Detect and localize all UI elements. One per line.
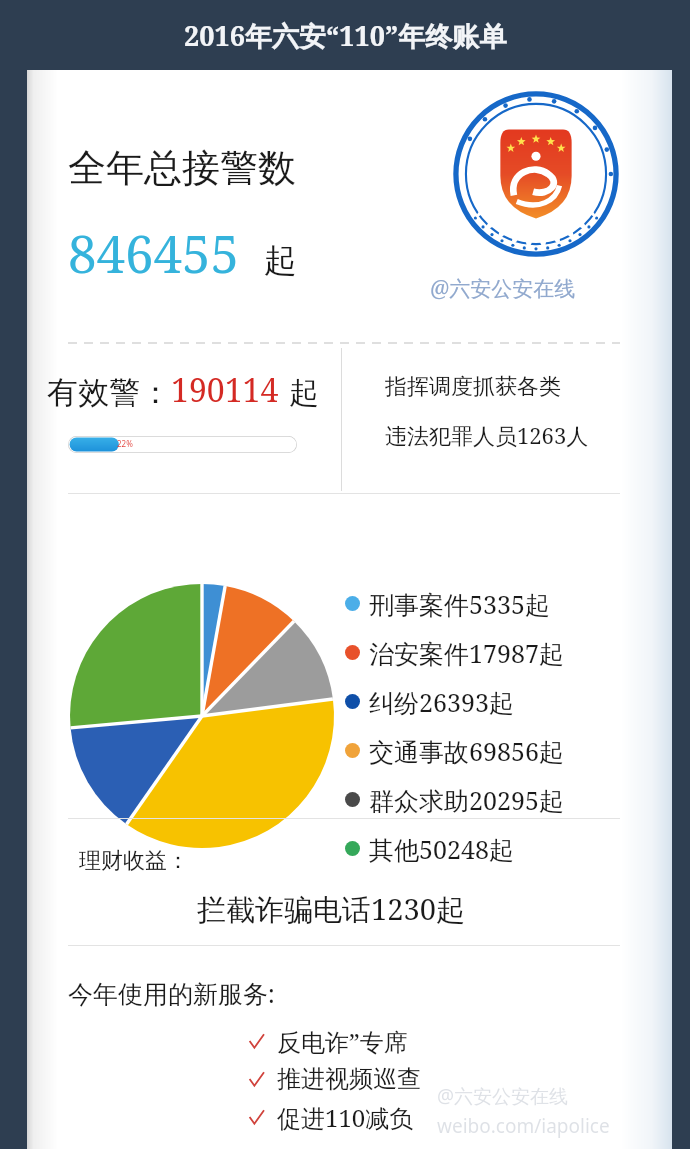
button[interactable]: 交通事故69856起 — [345, 726, 564, 775]
button[interactable]: 反电诈”专席 — [249, 1022, 408, 1060]
staticText: 今年使用的新服务: — [68, 976, 275, 1010]
staticText: 刑事案件5335起 — [369, 587, 550, 621]
button[interactable]: 22% — [68, 436, 297, 453]
staticText: 有效警： — [47, 373, 171, 412]
staticText: 2016年六安“110”年终账单 — [184, 17, 507, 54]
staticText: 拦截诈骗电话1230起 — [197, 889, 465, 929]
button[interactable]: 刑事案件5335起 — [345, 579, 550, 628]
staticText: 理财收益： — [79, 847, 189, 875]
staticText: 促进110减负 — [277, 1101, 414, 1134]
button[interactable]: 促进110减负 — [249, 1098, 414, 1136]
staticText: 交通事故69856起 — [369, 734, 564, 768]
button[interactable]: 治安案件17987起 — [345, 628, 564, 677]
staticText: 违法犯罪人员1263人 — [385, 420, 589, 450]
staticText: 治安案件17987起 — [369, 636, 564, 670]
staticText: 全年总接警数 — [68, 144, 296, 192]
staticText: 指挥调度抓获各类 — [385, 373, 561, 401]
staticText: 推进视频巡查 — [277, 1064, 421, 1094]
button[interactable]: 推进视频巡查 — [249, 1060, 421, 1098]
staticText: 反电诈”专席 — [277, 1025, 408, 1058]
staticText: @六安公安在线 — [437, 1083, 569, 1109]
button[interactable]: 六安公安警徽 — [448, 86, 624, 262]
staticText: weibo.com/iapolice — [437, 1113, 610, 1139]
staticText: 起 — [289, 374, 319, 412]
button[interactable]: 群众求助20295起 — [345, 775, 564, 824]
button[interactable]: 其他50248起 — [345, 824, 514, 873]
staticText: 190114 — [171, 368, 279, 412]
staticText: 其他50248起 — [369, 832, 514, 866]
staticText: 22% — [117, 438, 133, 449]
staticText: 起 — [264, 240, 297, 282]
staticText: 群众求助20295起 — [369, 783, 564, 817]
staticText: 846455 — [68, 218, 240, 287]
staticText: 纠纷26393起 — [369, 685, 514, 719]
staticText: @六安公安在线 — [430, 274, 576, 303]
button[interactable]: 纠纷26393起 — [345, 677, 514, 726]
